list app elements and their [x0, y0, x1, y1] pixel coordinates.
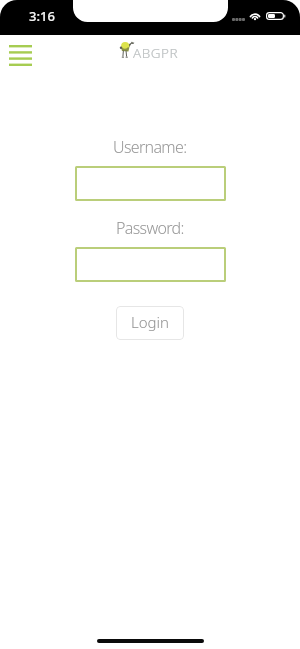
button[interactable]: [75, 166, 226, 201]
staticText: Username:: [113, 136, 187, 158]
button[interactable]: ABGPR logo: [120, 39, 178, 60]
button[interactable]: Login: [116, 306, 184, 340]
staticText: Password:: [116, 217, 184, 239]
button[interactable]: [75, 247, 226, 282]
staticText: Login: [131, 312, 169, 332]
staticText: 3:16: [29, 7, 55, 25]
staticText: ABGPR: [133, 44, 179, 62]
button[interactable]: Open navigation menu: [9, 45, 32, 66]
